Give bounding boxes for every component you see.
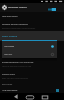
staticText: Desktop backup password (2, 23, 28, 26)
button[interactable]: Back (11, 93, 21, 100)
button[interactable]: Use ART (2, 50, 57, 58)
staticText: Desktop full backups aren't currently pr… (2, 27, 36, 29)
staticText: Use Dalvik (4, 45, 15, 48)
button[interactable]: Home (25, 93, 35, 100)
staticText: DEBUGGING (2, 83, 13, 85)
staticText: Developer options (8, 6, 27, 9)
button[interactable]: Process Stats (0, 70, 64, 81)
staticText: Enable Bluetooth HCI snoop log (2, 61, 34, 64)
staticText: Use ART (4, 53, 13, 56)
button[interactable]: Enable Bluetooth HCI snoop log (0, 58, 64, 69)
button[interactable]: Desktop backup password (0, 20, 64, 31)
staticText: Geeky stats about running processes (2, 77, 29, 79)
button[interactable]: Developer options on/off (48, 8, 56, 11)
staticText: Select runtime (2, 35, 17, 38)
staticText: Capture all bluetooth HCI packets in a f… (2, 65, 32, 67)
button[interactable]: Select runtime (0, 31, 64, 41)
button[interactable]: USB debugging (0, 87, 64, 93)
button[interactable]: Recent apps (40, 93, 50, 100)
button[interactable]: Use Dalvik (2, 42, 57, 50)
button[interactable]: Take bug report (0, 13, 64, 20)
staticText: Process Stats (2, 73, 15, 76)
staticText: USB debugging (2, 89, 18, 92)
staticText: Take bug report (2, 15, 18, 18)
button[interactable]: Developer options (2, 5, 7, 10)
